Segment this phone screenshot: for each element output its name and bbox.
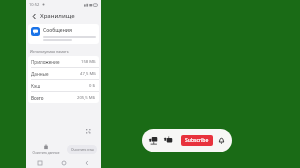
button[interactable]: Subscribe	[181, 135, 213, 146]
button[interactable]: Очистить кэш	[67, 145, 97, 154]
button[interactable]: Всего	[28, 92, 99, 103]
staticText: 158 МБ	[81, 59, 96, 65]
staticText: Subscribe	[185, 137, 209, 144]
staticText: Данные	[31, 71, 49, 77]
button[interactable]: Back	[78, 157, 96, 168]
button[interactable]: Like	[147, 134, 160, 147]
button[interactable]: Notifications	[216, 135, 227, 146]
button[interactable]: Данные	[28, 68, 99, 79]
staticText: Хранилище	[40, 12, 75, 20]
staticText: Используемая память	[30, 49, 69, 54]
button[interactable]: Home	[55, 157, 73, 168]
button[interactable]: App shortcuts	[84, 127, 93, 136]
staticText: 10:52	[29, 2, 40, 7]
staticText: Всего	[31, 95, 44, 101]
staticText: Очистить кэш	[71, 147, 94, 152]
button[interactable]: Dislike	[162, 134, 175, 147]
staticText: Очистить данные	[32, 151, 60, 155]
staticText: Кэш	[31, 83, 41, 89]
staticText: 205,5 МБ	[77, 95, 96, 101]
staticText: 47,5 МБ	[80, 71, 96, 77]
button[interactable]: Back	[29, 11, 39, 21]
button[interactable]: Приложение	[28, 56, 99, 67]
button[interactable]: Recents	[31, 157, 49, 168]
button[interactable]: Сообщения	[28, 24, 99, 44]
button[interactable]: Кэш	[28, 80, 99, 91]
staticText: Сообщения	[43, 27, 72, 34]
button[interactable]: Очистить данные	[30, 142, 62, 157]
staticText: 0 Б	[89, 83, 96, 89]
staticText: Приложение	[31, 59, 60, 65]
